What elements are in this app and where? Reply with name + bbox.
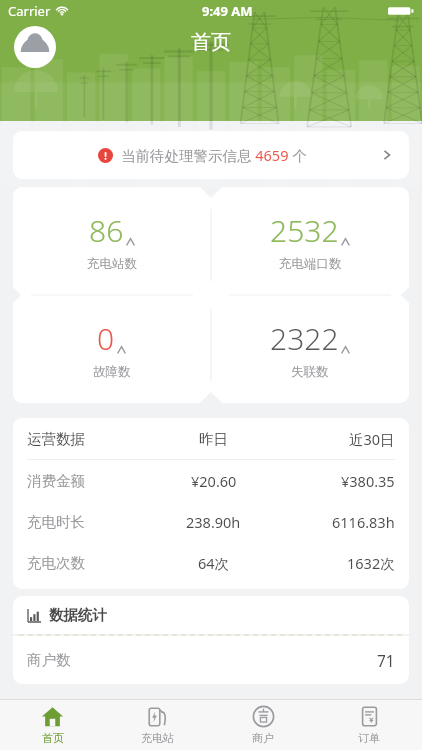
button[interactable]: 订单: [316, 700, 422, 750]
staticText: 充电端口数: [279, 256, 342, 272]
button[interactable]: 运营数据: [27, 418, 395, 459]
button[interactable]: 86: [13, 187, 211, 295]
staticText: 充电站: [141, 731, 174, 745]
staticText: 消费金额: [27, 472, 85, 490]
staticText: 9:49 AM: [202, 2, 253, 20]
staticText: 71: [377, 650, 395, 671]
staticText: 订单: [358, 731, 380, 745]
staticText: 近30日: [349, 429, 395, 449]
button[interactable]: 首页: [0, 700, 105, 750]
button[interactable]: 商户数: [13, 636, 409, 684]
button[interactable]: 消费金额: [27, 460, 395, 501]
staticText: 故障数: [93, 364, 131, 380]
button[interactable]: Profile: [14, 26, 56, 68]
button[interactable]: 数据统计: [13, 596, 409, 634]
staticText: 商户数: [27, 651, 71, 669]
button[interactable]: 充电次数: [27, 542, 395, 583]
staticText: 238.90h: [186, 512, 241, 532]
staticText: 充电站数: [87, 256, 137, 272]
staticText: Carrier: [8, 2, 51, 20]
staticText: 失联数: [291, 364, 329, 380]
button[interactable]: 2322: [211, 295, 409, 403]
staticText: ¥380.35: [341, 471, 395, 491]
button[interactable]: 当前待处理警示信息 4659 个: [13, 131, 409, 179]
staticText: 0: [97, 318, 115, 359]
button[interactable]: 充电时长: [27, 501, 395, 542]
staticText: 首页: [42, 731, 64, 745]
staticText: 商户: [252, 731, 274, 745]
staticText: 数据统计: [49, 606, 107, 624]
staticText: 充电时长: [27, 513, 85, 531]
button[interactable]: 充电站: [105, 700, 210, 750]
staticText: ¥20.60: [191, 471, 237, 491]
staticText: 2532: [270, 210, 339, 251]
staticText: 充电次数: [27, 554, 85, 572]
staticText: 64次: [198, 553, 230, 573]
staticText: 运营数据: [27, 430, 85, 448]
button[interactable]: 0: [13, 295, 211, 403]
staticText: 1632次: [347, 553, 395, 573]
staticText: 昨日: [199, 430, 228, 448]
button[interactable]: 2532: [211, 187, 409, 295]
staticText: 2322: [270, 318, 339, 359]
button[interactable]: 商户: [210, 700, 316, 750]
staticText: 6116.83h: [332, 512, 395, 532]
staticText: 86: [89, 210, 124, 251]
staticText: 当前待处理警示信息 4659 个: [121, 145, 307, 165]
staticText: 首页: [191, 30, 231, 55]
